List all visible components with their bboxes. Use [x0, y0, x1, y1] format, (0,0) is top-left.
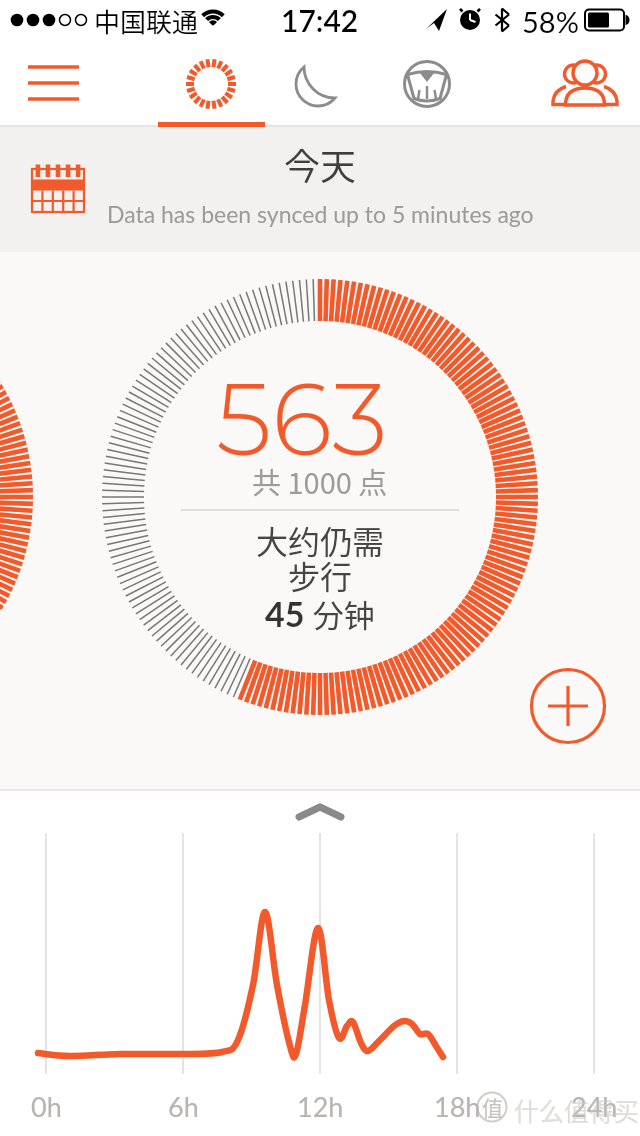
button[interactable] — [26, 155, 90, 215]
button[interactable] — [18, 54, 90, 116]
staticText: 563 — [216, 358, 388, 480]
button[interactable] — [282, 48, 354, 120]
staticText: 58% — [522, 4, 579, 39]
button[interactable] — [284, 794, 356, 830]
staticText: 步行 — [288, 552, 353, 598]
staticText: 今天 — [284, 138, 357, 190]
staticText: 中国联通 — [94, 2, 199, 40]
staticText: 值 — [482, 1092, 503, 1122]
staticText: 12h — [297, 1090, 344, 1122]
staticText: 17:42 — [281, 2, 359, 38]
staticText: Data has been synced up to 5 minutes ago — [107, 200, 534, 228]
button[interactable] — [530, 668, 606, 744]
staticText: 0h — [31, 1090, 62, 1122]
staticText: 18h — [434, 1090, 481, 1122]
staticText: 24h — [571, 1090, 618, 1122]
staticText: 什么值得买 — [514, 1092, 640, 1128]
button[interactable] — [549, 48, 621, 120]
button[interactable] — [175, 48, 247, 120]
button[interactable] — [391, 48, 463, 120]
staticText: 共 1000 点 — [252, 460, 388, 502]
staticText: 大约仍需 — [256, 517, 385, 563]
staticText: 6h — [168, 1090, 199, 1122]
staticText: 45 分钟 — [265, 591, 375, 636]
